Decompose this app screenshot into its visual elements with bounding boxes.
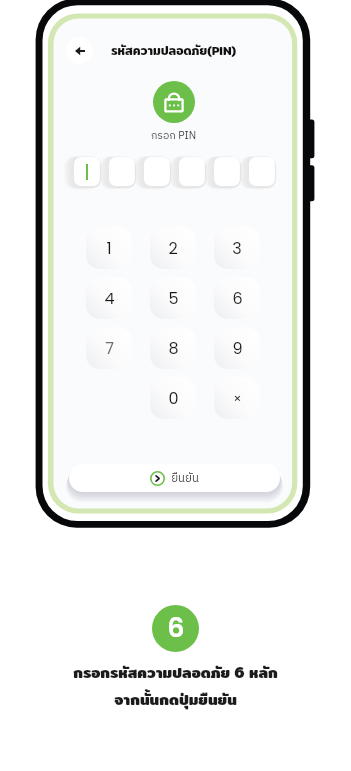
button[interactable]: 9: [214, 327, 260, 369]
button[interactable]: ×: [214, 377, 260, 419]
button[interactable]: [179, 157, 205, 186]
staticText: 2: [168, 237, 178, 259]
staticText: จากนั้นกดปุ่มยืนยัน: [114, 688, 237, 712]
button[interactable]: 2: [150, 227, 196, 269]
button[interactable]: 1: [86, 227, 132, 269]
button[interactable]: Back: [66, 37, 93, 64]
button[interactable]: [214, 157, 240, 186]
button[interactable]: ยืนยัน: [69, 464, 280, 492]
staticText: กรอก PIN: [54, 127, 293, 144]
button[interactable]: 3: [214, 227, 260, 269]
button[interactable]: 0: [150, 377, 196, 419]
staticText: 9: [232, 337, 243, 359]
staticText: 7: [105, 337, 114, 359]
button[interactable]: 5: [150, 277, 196, 319]
button[interactable]: [74, 157, 100, 186]
staticText: 0: [168, 387, 179, 409]
staticText: 3: [232, 237, 242, 259]
staticText: 4: [104, 287, 115, 309]
staticText: กรอกรหัสความปลอดภัย 6 หลัก: [73, 661, 278, 685]
button[interactable]: 7: [86, 327, 132, 369]
staticText: ×: [233, 389, 242, 407]
button[interactable]: 4: [86, 277, 132, 319]
button[interactable]: 8: [150, 327, 196, 369]
staticText: รหัสความปลอดภัย(PIN): [54, 41, 293, 60]
button[interactable]: [144, 157, 170, 186]
staticText: 6: [232, 287, 243, 309]
button[interactable]: Step 6: [152, 605, 199, 652]
staticText: 6: [167, 609, 185, 647]
button[interactable]: 6: [214, 277, 260, 319]
staticText: 1: [106, 237, 112, 259]
staticText: ยืนยัน: [171, 469, 199, 488]
button[interactable]: [249, 157, 275, 186]
button[interactable]: [109, 157, 135, 186]
staticText: 5: [168, 287, 179, 309]
staticText: 8: [168, 337, 179, 359]
